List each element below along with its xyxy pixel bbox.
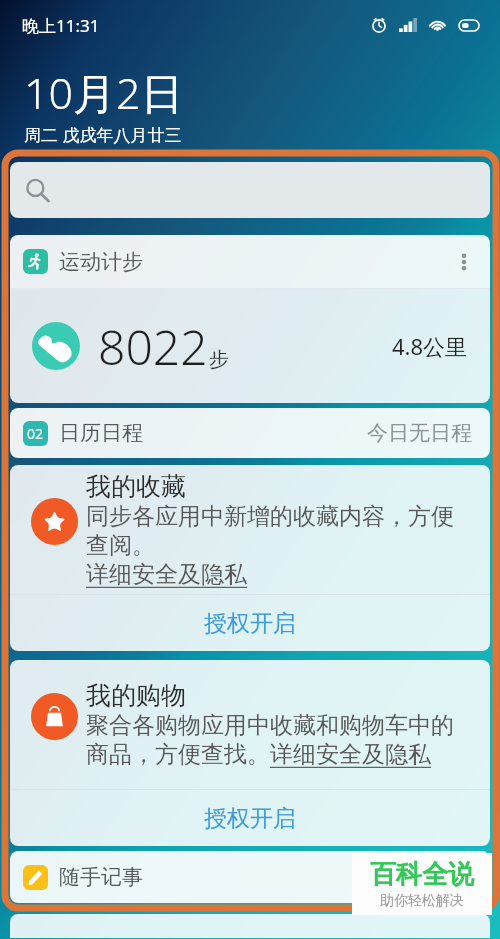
button[interactable]: 我的收藏 — [10, 465, 490, 594]
staticText: 我的购物 — [86, 680, 186, 711]
staticText: 我的收藏 — [86, 471, 186, 502]
staticText: 授权开启 — [204, 609, 296, 638]
staticText: 运动计步 — [59, 249, 143, 275]
staticText: 晚上11:31 — [22, 14, 100, 37]
staticText: 同步各应用中新增的收藏内容，方便 — [86, 502, 454, 531]
staticText: 授权开启 — [204, 804, 296, 833]
button[interactable]: 授权开启 — [10, 790, 490, 846]
staticText: 助你轻松解决 — [380, 892, 464, 910]
staticText: 查阅。 — [86, 531, 155, 560]
button[interactable]: 02 — [10, 408, 490, 458]
button[interactable]: 运动计步 — [10, 235, 490, 288]
staticText: 10月2日 — [24, 63, 184, 122]
staticText: 步 — [209, 347, 229, 372]
staticText: 随手记事 — [59, 864, 143, 890]
staticText: 4.8公里 — [392, 331, 468, 361]
button[interactable]: 8022 — [10, 289, 490, 403]
button[interactable]: Search — [10, 162, 490, 218]
staticText: 日历日程 — [59, 420, 143, 446]
staticText: 今日无日程 — [367, 420, 472, 446]
staticText: 随手记 — [409, 864, 472, 890]
staticText: 详细安全及隐私 — [270, 740, 431, 769]
button[interactable]: 随手记事 — [10, 851, 490, 903]
button[interactable]: More options — [449, 247, 479, 277]
staticText: 百科全说 — [370, 858, 474, 891]
staticText: 周二 戊戌年八月廿三 — [24, 123, 182, 146]
staticText: 8022 — [98, 314, 208, 379]
button[interactable]: 授权开启 — [10, 595, 490, 651]
button[interactable]: 我的购物 — [10, 660, 490, 789]
staticText: 详细安全及隐私 — [86, 560, 247, 589]
staticText: 商品，方便查找。 — [86, 740, 270, 769]
staticText: 02 — [27, 424, 44, 443]
staticText: 聚合各购物应用中收藏和购物车中的 — [86, 711, 454, 740]
